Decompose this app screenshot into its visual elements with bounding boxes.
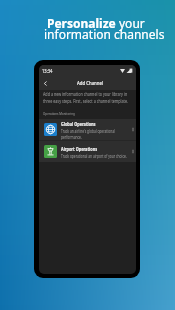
button[interactable]: Airport Operations bbox=[39, 141, 136, 162]
staticText: Operations Monitoring bbox=[43, 111, 76, 116]
staticText: Personalize bbox=[47, 15, 119, 31]
button[interactable]: Global Operations bbox=[39, 119, 136, 140]
staticText: Add Channel bbox=[77, 79, 104, 87]
staticText: information channels bbox=[44, 26, 165, 42]
button[interactable]: Back bbox=[39, 77, 52, 90]
staticText: Airport Operations bbox=[61, 145, 97, 152]
staticText: your bbox=[119, 15, 145, 31]
staticText: Global Operations bbox=[61, 120, 96, 127]
staticText: Track operational an airport of your cho… bbox=[61, 153, 127, 159]
staticText: Add a new information channel to your li… bbox=[43, 91, 133, 105]
staticText: Track an airline's global operational pe… bbox=[61, 128, 133, 140]
staticText: 13:34 bbox=[42, 67, 53, 74]
